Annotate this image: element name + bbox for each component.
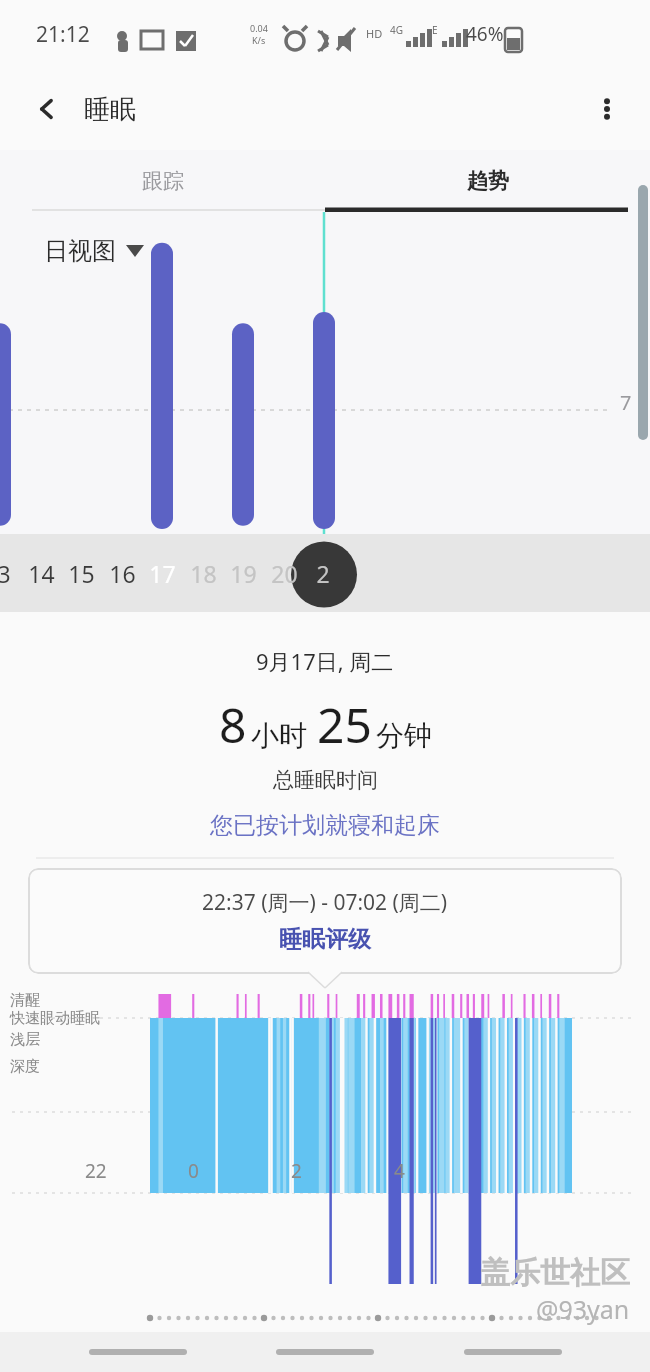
- button[interactable]: 3: [0, 534, 34, 612]
- button[interactable]: Navigation button: [275, 1339, 375, 1365]
- button[interactable]: More options: [582, 84, 632, 134]
- staticText: 19: [230, 558, 257, 589]
- button[interactable]: 22:37 (周一) - 07:02 (周二): [28, 868, 622, 974]
- staticText: 9月17日, 周二: [256, 646, 394, 676]
- staticText: 18: [190, 558, 217, 589]
- staticText: 21:12: [36, 20, 90, 49]
- staticText: K/s: [252, 34, 266, 46]
- staticText: 2: [291, 1158, 302, 1184]
- button[interactable]: 17: [132, 534, 192, 612]
- staticText: 16: [109, 558, 136, 589]
- staticText: 睡眠: [84, 93, 136, 126]
- staticText: 深度: [10, 1057, 40, 1076]
- staticText: 分钟: [376, 718, 432, 753]
- button[interactable]: 14: [11, 534, 71, 612]
- button[interactable]: 2: [293, 534, 353, 612]
- staticText: 睡眠评级: [279, 925, 371, 954]
- button[interactable]: 15: [51, 534, 111, 612]
- button[interactable]: 跟踪: [0, 150, 325, 212]
- staticText: 您已按计划就寝和起床: [210, 811, 440, 840]
- staticText: 15: [68, 558, 95, 589]
- button[interactable]: Navigation button: [88, 1339, 188, 1365]
- staticText: 46%: [466, 21, 504, 47]
- staticText: 0: [188, 1158, 199, 1184]
- button[interactable]: 您已按计划就寝和起床: [202, 809, 448, 842]
- button[interactable]: Back: [22, 83, 74, 135]
- staticText: 浅层: [10, 1030, 40, 1049]
- staticText: 7: [620, 389, 632, 416]
- button[interactable]: 16: [92, 534, 152, 612]
- staticText: 0.04: [250, 22, 268, 34]
- staticText: 3: [0, 558, 11, 589]
- staticText: HD: [366, 26, 383, 41]
- staticText: 4: [394, 1158, 405, 1184]
- button[interactable]: 日视图: [40, 232, 148, 270]
- staticText: 4G: [390, 23, 403, 37]
- staticText: 总睡眠时间: [273, 767, 378, 793]
- staticText: 跟踪: [142, 168, 184, 194]
- staticText: 快速眼动睡眠: [10, 1009, 100, 1028]
- staticText: 小时: [251, 718, 307, 753]
- staticText: 20: [271, 558, 298, 589]
- staticText: 17: [149, 558, 176, 589]
- staticText: 22: [85, 1158, 107, 1184]
- staticText: 2: [316, 558, 330, 589]
- staticText: 清醒: [10, 991, 40, 1010]
- button[interactable]: 19: [213, 534, 273, 612]
- button[interactable]: 20: [254, 534, 314, 612]
- staticText: 22:37 (周一) - 07:02 (周二): [202, 888, 448, 917]
- staticText: 8: [219, 692, 247, 757]
- staticText: 趋势: [467, 168, 509, 194]
- button[interactable]: Navigation button: [463, 1339, 563, 1365]
- button[interactable]: 趋势: [325, 150, 650, 212]
- button[interactable]: 18: [173, 534, 233, 612]
- staticText: 日视图: [44, 236, 116, 266]
- staticText: 盖乐世社区: [480, 1254, 630, 1292]
- staticText: @93yan: [536, 1292, 630, 1326]
- staticText: 25: [317, 692, 372, 757]
- staticText: 14: [28, 558, 55, 589]
- staticText: E: [432, 23, 438, 37]
